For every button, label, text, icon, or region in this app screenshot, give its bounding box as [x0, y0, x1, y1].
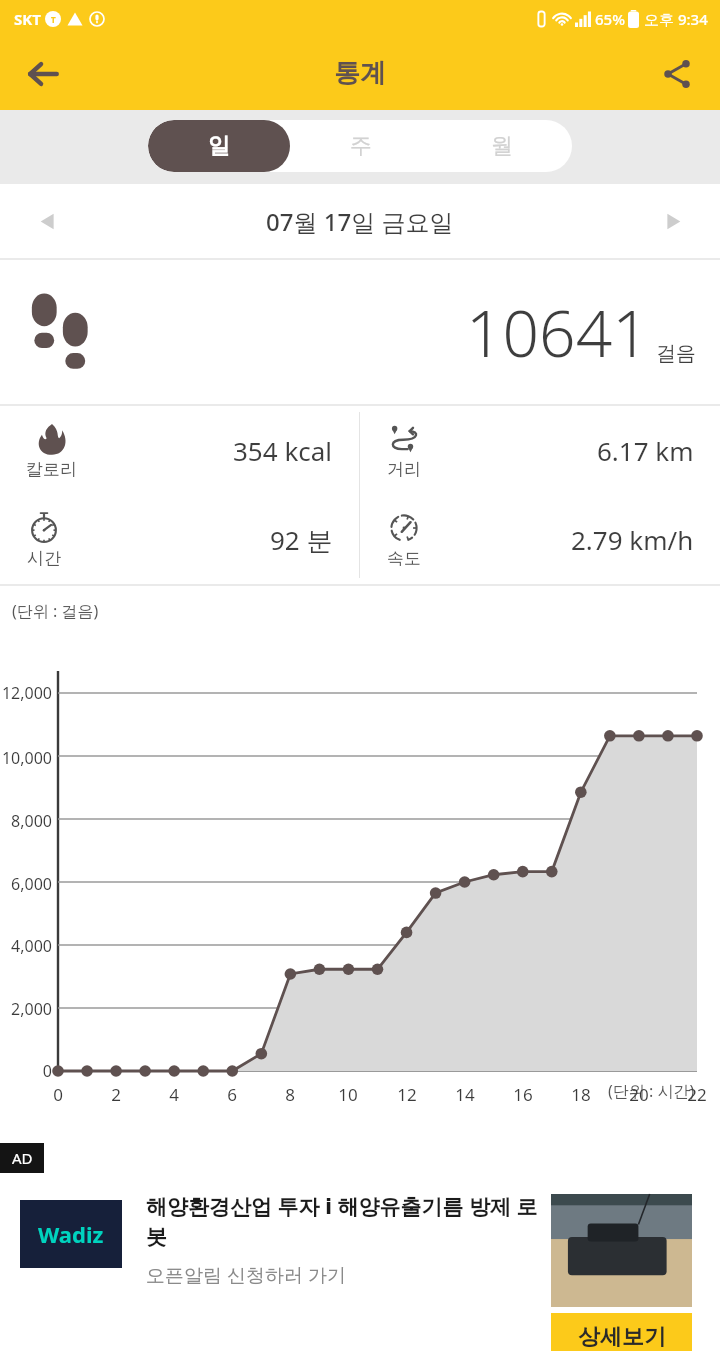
button[interactable]: 상세보기 [551, 1313, 692, 1351]
staticText: 10,000 [0, 747, 52, 769]
staticText: 오픈알림 신청하러 가기 [146, 1262, 346, 1288]
button[interactable]: 주 [290, 120, 431, 172]
staticText: (단위 : 시간) [608, 1080, 695, 1102]
button[interactable]: Share [648, 45, 706, 103]
button[interactable]: 일 [148, 120, 290, 172]
staticText: 20 [623, 1083, 655, 1106]
staticText: 92 분 [270, 522, 333, 558]
staticText: 해양환경산업 투자 ⅰ 해양유출기름 방제 로봇 [146, 1192, 538, 1251]
staticText: 10 [332, 1083, 364, 1106]
staticText: 0 [42, 1083, 74, 1106]
staticText: 2,000 [0, 998, 52, 1020]
staticText: T [51, 14, 56, 25]
button[interactable]: 거리 [360, 406, 720, 495]
staticText: 10641 [466, 289, 649, 376]
staticText: 통계 [334, 57, 386, 90]
staticText: AD [12, 1148, 33, 1168]
button[interactable]: Next day [648, 197, 696, 245]
staticText: 속도 [387, 548, 421, 569]
staticText: 칼로리 [26, 459, 77, 480]
staticText: 주 [350, 132, 372, 160]
staticText: 6.17 km [597, 433, 694, 468]
staticText: Wadiz [38, 1219, 104, 1249]
staticText: 걸음 [656, 341, 696, 366]
staticText: 4 [158, 1083, 190, 1106]
staticText: 07월 17일 금요일 [266, 205, 454, 238]
staticText: 8,000 [0, 810, 52, 832]
staticText: 8 [274, 1083, 306, 1106]
button[interactable]: Back [14, 45, 72, 103]
staticText: 2 [100, 1083, 132, 1106]
staticText: (단위 : 걸음) [12, 600, 99, 622]
staticText: SKT [14, 9, 41, 29]
staticText: 16 [507, 1083, 539, 1106]
button[interactable]: Previous day [24, 197, 72, 245]
button[interactable]: 시간 [0, 495, 359, 584]
button[interactable]: 속도 [360, 495, 720, 584]
staticText: 4,000 [0, 935, 52, 957]
staticText: 65% [595, 9, 625, 29]
staticText: 12 [391, 1083, 423, 1106]
staticText: 월 [491, 132, 513, 160]
staticText: 2.79 km/h [571, 522, 694, 557]
staticText: 22 [681, 1083, 713, 1106]
staticText: 12,000 [0, 682, 52, 704]
staticText: 거리 [387, 459, 421, 480]
staticText: 354 kcal [233, 433, 333, 468]
staticText: 오후 9:34 [644, 9, 708, 29]
staticText: 일 [208, 132, 230, 160]
button[interactable]: 월 [431, 120, 572, 172]
button[interactable]: AD [0, 1143, 720, 1351]
staticText: 18 [565, 1083, 597, 1106]
staticText: 6 [216, 1083, 248, 1106]
button[interactable]: 칼로리 [0, 406, 359, 495]
staticText: 상세보기 [578, 1323, 666, 1351]
staticText: 시간 [27, 548, 61, 569]
staticText: 14 [449, 1083, 481, 1106]
staticText: 6,000 [0, 873, 52, 895]
staticText: 0 [0, 1060, 52, 1082]
